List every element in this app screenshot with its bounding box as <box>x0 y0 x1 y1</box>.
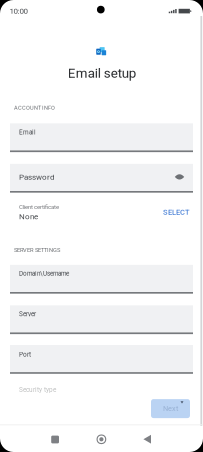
staticText: SERVER SETTINGS <box>14 247 60 253</box>
button[interactable]: Password <box>10 164 193 193</box>
button[interactable]: Port <box>10 345 193 374</box>
staticText: Password <box>19 172 55 182</box>
button[interactable]: Server <box>10 305 193 334</box>
staticText: ACCOUNT INFO <box>14 104 55 111</box>
staticText: None <box>19 212 38 221</box>
button[interactable]: Email <box>10 123 193 152</box>
staticText: Next <box>163 404 178 413</box>
staticText: Client certificate <box>19 203 59 210</box>
staticText: Email setup <box>68 65 136 81</box>
staticText: SELECT <box>163 208 190 217</box>
button[interactable]: Back <box>135 427 159 452</box>
staticText: 10:00 <box>9 6 27 16</box>
staticText: Server <box>19 310 36 318</box>
button[interactable]: Recent apps <box>43 428 67 451</box>
staticText: Email <box>19 129 36 136</box>
button[interactable]: Home <box>89 427 114 452</box>
button[interactable]: Next <box>151 399 190 418</box>
button[interactable]: Show password <box>171 170 188 184</box>
staticText: Security type <box>19 386 56 394</box>
button[interactable]: Client certificate <box>10 200 193 224</box>
staticText: Domain\Username <box>19 270 69 277</box>
staticText: Port <box>19 351 31 358</box>
button[interactable]: Domain\Username <box>10 265 193 294</box>
